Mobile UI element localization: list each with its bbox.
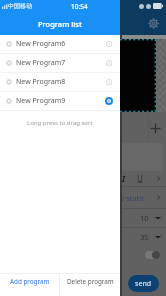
button[interactable]: send <box>128 275 159 292</box>
button[interactable]: New Program7 <box>0 54 120 72</box>
staticText: U <box>137 173 143 184</box>
button[interactable]: Settings <box>148 18 159 29</box>
button[interactable]: New Program8 <box>0 73 120 91</box>
button[interactable]: New Program6 <box>0 35 120 53</box>
button[interactable]: Add program <box>0 274 59 296</box>
staticText: 3S <box>140 232 149 242</box>
button[interactable]: New Program9 <box>0 92 120 110</box>
button[interactable]: 3S <box>0 228 166 245</box>
staticText: New Program6 <box>16 39 106 49</box>
staticText: send <box>135 279 152 289</box>
staticText: Long press to drag sort <box>27 119 93 127</box>
staticText: Delete program <box>67 277 114 286</box>
staticText: New Program9 <box>16 96 106 106</box>
staticText: New Program8 <box>16 77 106 87</box>
staticText: 中国移动 <box>8 2 32 10</box>
staticText: 10:54 <box>71 2 88 11</box>
button[interactable]: I <box>0 171 166 186</box>
staticText: ay static <box>116 193 145 203</box>
button[interactable]: Add <box>150 123 161 134</box>
button[interactable]: Toggle <box>145 251 160 259</box>
button[interactable]: ay static <box>0 187 166 208</box>
button[interactable]: 10 <box>0 209 166 227</box>
staticText: I <box>122 173 126 184</box>
staticText: New Program7 <box>16 58 106 68</box>
button[interactable]: Delete program <box>60 274 120 296</box>
staticText: 10 <box>140 213 149 223</box>
staticText: Program list <box>38 19 82 29</box>
staticText: Add program <box>10 277 50 286</box>
